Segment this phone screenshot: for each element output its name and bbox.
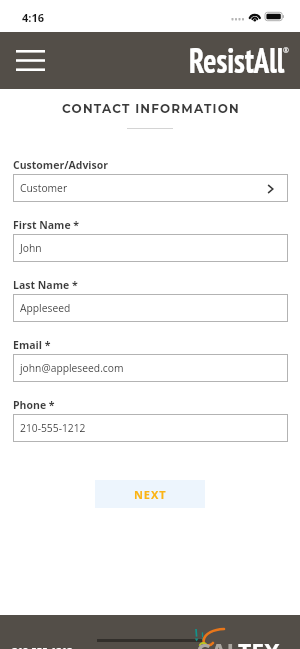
button[interactable]: Open navigation menu [2,32,59,89]
staticText: Customer/Advisor [13,158,109,172]
button[interactable]: Customer [13,174,288,202]
button[interactable]: Appleseed [13,294,288,322]
staticText: First Name * [13,218,80,232]
button[interactable]: 210-555-1212 [13,414,288,442]
staticText: CONTACT INFORMATION [1,101,300,116]
staticText: NEXT [134,487,167,502]
staticText: Last Name * [13,278,78,292]
staticText: 210-555-1212 [20,421,86,435]
staticText: TEX [238,636,280,649]
button[interactable]: john@appleseed.com [13,354,288,382]
staticText: John [20,241,42,255]
staticText: Customer [20,181,68,195]
button[interactable]: NEXT [95,480,205,508]
staticText: Email * [13,338,51,352]
staticText: 210-555-1212 [12,644,73,649]
staticText: john@appleseed.com [20,361,124,375]
button[interactable]: John [13,234,288,262]
staticText: 4:16 [22,10,45,25]
staticText: Appleseed [20,301,71,315]
staticText: CAL [196,636,240,649]
staticText: ResistAll [189,38,285,82]
staticText: ® [283,46,289,56]
staticText: Phone * [13,398,55,412]
